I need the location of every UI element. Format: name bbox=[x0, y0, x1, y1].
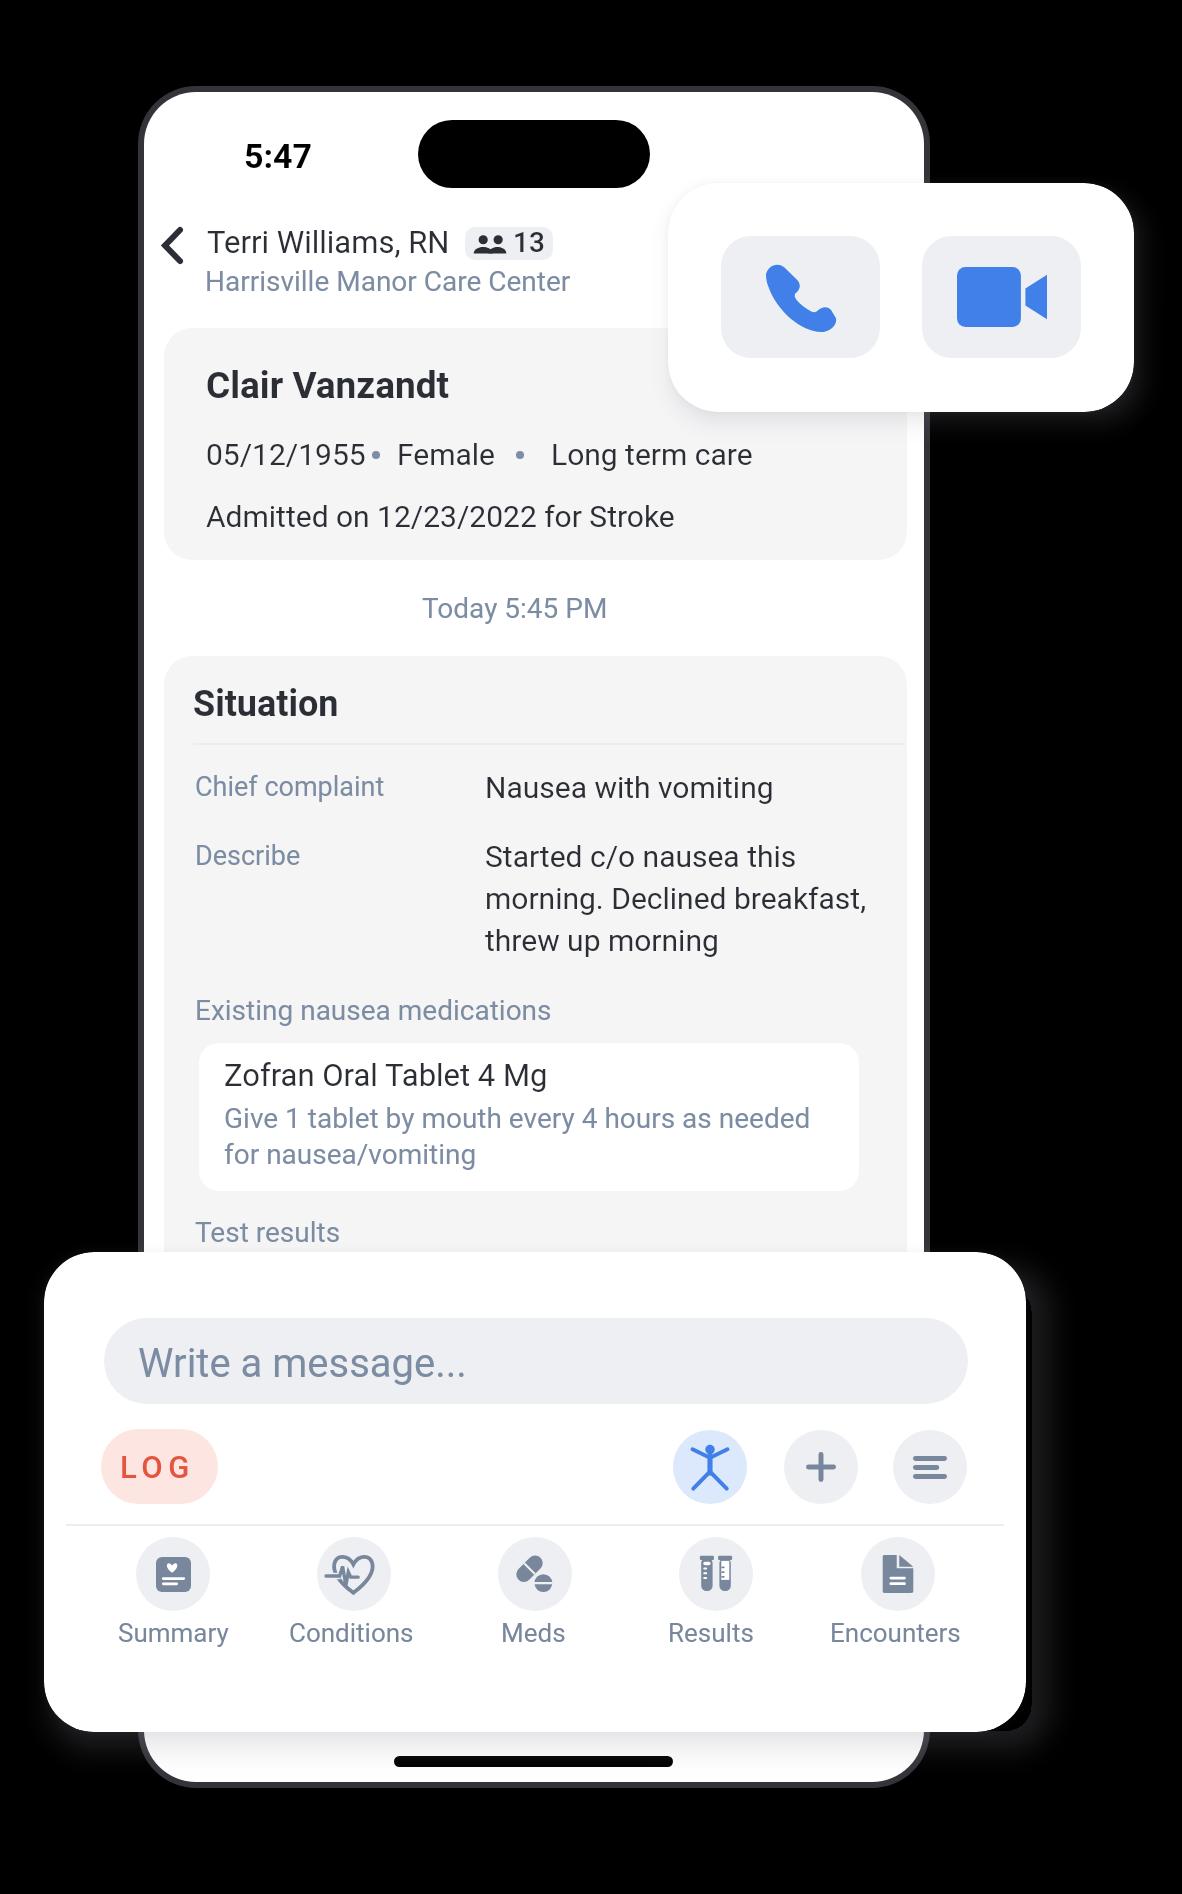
button[interactable]: Menu bbox=[893, 1430, 967, 1504]
staticText: 13 bbox=[513, 227, 545, 259]
staticText: Today 5:45 PM bbox=[422, 592, 608, 625]
staticText: Write a message... bbox=[138, 1340, 467, 1387]
button[interactable]: Summary bbox=[98, 1537, 248, 1652]
button[interactable]: 13 participants bbox=[465, 227, 553, 260]
button[interactable]: Clair Vanzandt bbox=[164, 328, 907, 560]
staticText: Existing nausea medications bbox=[195, 994, 552, 1027]
staticText: Zofran Oral Tablet 4 Mg bbox=[224, 1057, 548, 1093]
staticText: 05/12/1955 bbox=[206, 437, 366, 472]
button[interactable]: Write a message... bbox=[104, 1318, 968, 1404]
button[interactable]: Back bbox=[144, 201, 210, 289]
staticText: Situation bbox=[193, 683, 339, 725]
button[interactable]: Call bbox=[721, 236, 880, 358]
staticText: Harrisville Manor Care Center bbox=[205, 265, 571, 298]
staticText: Nausea with vomiting bbox=[485, 770, 774, 805]
staticText: threw up morning bbox=[485, 923, 719, 958]
staticText: Give 1 tablet by mouth every 4 hours as … bbox=[224, 1102, 811, 1135]
button[interactable]: Zofran Oral Tablet 4 Mg bbox=[199, 1043, 859, 1191]
staticText: Admitted on 12/23/2022 for Stroke bbox=[206, 499, 675, 534]
staticText: Meds bbox=[501, 1618, 566, 1648]
staticText: 5:47 bbox=[244, 136, 313, 176]
button[interactable]: Conditions bbox=[279, 1537, 429, 1652]
button[interactable]: Accessibility bbox=[673, 1430, 747, 1504]
button[interactable]: Results bbox=[641, 1537, 791, 1652]
staticText: Describe bbox=[195, 840, 301, 872]
staticText: Female bbox=[397, 437, 496, 472]
staticText: Encounters bbox=[830, 1618, 961, 1648]
button[interactable]: Video call bbox=[922, 236, 1081, 358]
staticText: Conditions bbox=[289, 1618, 414, 1648]
staticText: Clair Vanzandt bbox=[206, 364, 450, 407]
staticText: Terri Williams, RN bbox=[207, 224, 450, 260]
staticText: Long term care bbox=[551, 437, 753, 472]
staticText: Test results bbox=[195, 1216, 341, 1249]
staticText: Summary bbox=[118, 1618, 229, 1648]
staticText: LOG bbox=[120, 1449, 195, 1485]
staticText: Results bbox=[668, 1618, 754, 1648]
button[interactable]: Add bbox=[784, 1430, 858, 1504]
button[interactable]: Encounters bbox=[823, 1537, 973, 1652]
staticText: Started c/o nausea this bbox=[485, 839, 797, 874]
button[interactable]: Meds bbox=[460, 1537, 610, 1652]
staticText: Chief complaint bbox=[195, 771, 385, 803]
staticText: for nausea/vomiting bbox=[224, 1138, 477, 1171]
button[interactable]: LOG bbox=[101, 1429, 218, 1504]
staticText: morning. Declined breakfast, bbox=[485, 881, 867, 916]
